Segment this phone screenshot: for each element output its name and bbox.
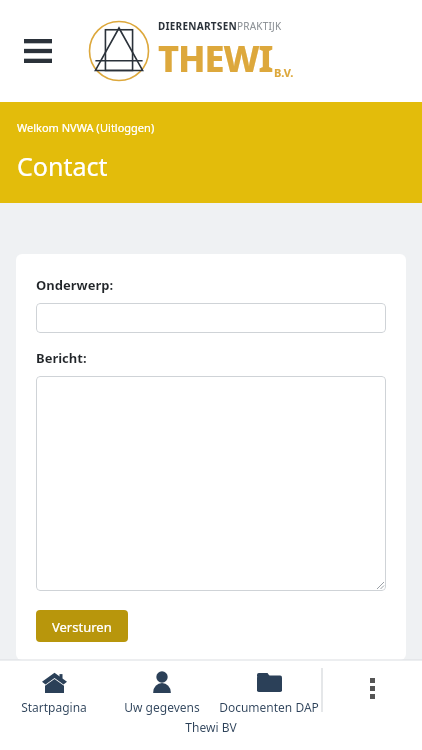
staticText: Bericht:: [36, 349, 87, 367]
staticText: Documenten DAP: [219, 699, 319, 715]
staticText: THEWI: [158, 34, 273, 83]
staticText: Welkom NVWA (: [17, 120, 100, 135]
staticText: ): [151, 120, 155, 135]
staticText: B.V.: [274, 65, 294, 80]
staticText: Onderwerp:: [36, 276, 114, 294]
button[interactable]: Menu: [16, 29, 60, 73]
staticText: Startpagina: [21, 699, 87, 715]
staticText: DIERENARTSEN: [158, 19, 237, 33]
button[interactable]: Documenten DAP: [215, 660, 322, 750]
staticText: Thewi BV: [185, 719, 237, 735]
button[interactable]: Onderwerp invoerveld: [36, 303, 386, 333]
staticText: Contact: [17, 149, 108, 183]
staticText: Versturen: [52, 618, 112, 634]
button[interactable]: Uitloggen: [100, 120, 151, 135]
staticText: PRAKTIJK: [237, 19, 282, 33]
button[interactable]: Meer opties: [350, 666, 394, 710]
button[interactable]: Bericht invoerveld: [36, 376, 386, 591]
button[interactable]: Startpagina: [0, 660, 108, 750]
button[interactable]: Uw gegevens: [108, 660, 215, 750]
button[interactable]: Versturen: [36, 610, 128, 642]
staticText: Uw gegevens: [124, 699, 200, 715]
staticText: Uitloggen: [100, 120, 151, 135]
